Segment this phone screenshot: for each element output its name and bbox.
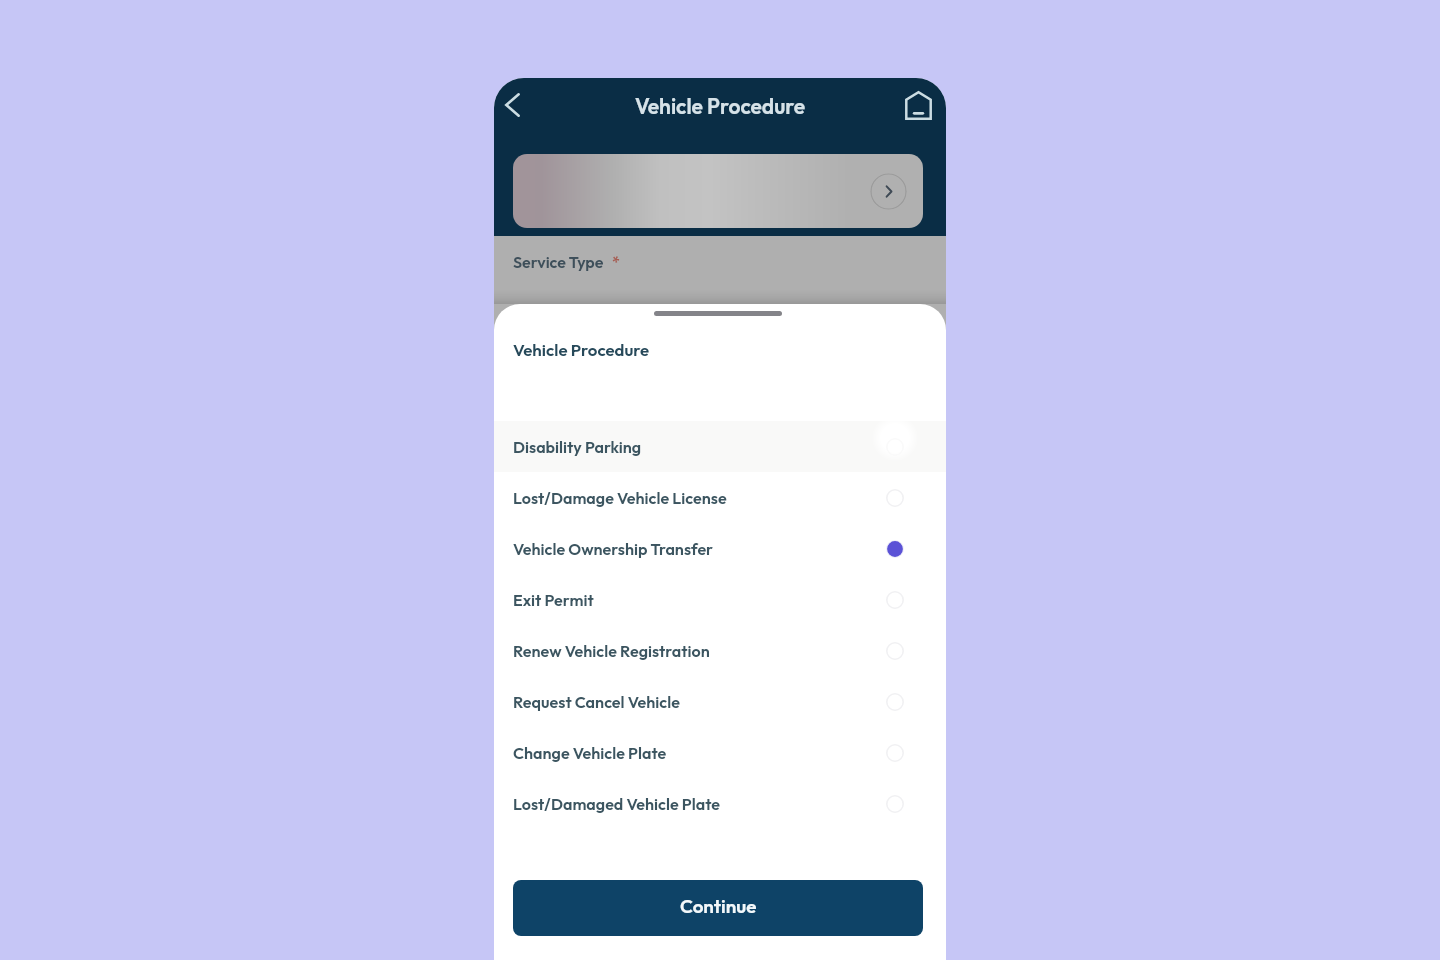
button[interactable]: Disability Parking <box>494 421 946 472</box>
staticText: Vehicle Procedure <box>513 339 650 360</box>
staticText: Change Vehicle Plate <box>513 743 886 763</box>
button[interactable]: Vehicle Ownership Transfer <box>494 523 946 574</box>
staticText: Renew Vehicle Registration <box>513 641 886 661</box>
button[interactable]: Open <box>513 154 923 228</box>
staticText: Vehicle Procedure <box>494 93 946 119</box>
button[interactable]: Back <box>494 83 534 127</box>
staticText: * <box>612 252 620 272</box>
button[interactable]: Request Cancel Vehicle <box>494 676 946 727</box>
button[interactable]: Exit Permit <box>494 574 946 625</box>
button[interactable]: Continue <box>513 880 923 936</box>
staticText: Lost/Damaged Vehicle Plate <box>513 794 886 814</box>
staticText: Disability Parking <box>513 437 886 457</box>
staticText: Continue <box>680 894 757 918</box>
other: Open <box>870 173 907 210</box>
staticText: Vehicle Ownership Transfer <box>513 539 886 559</box>
staticText: Exit Permit <box>513 590 886 610</box>
staticText: Service Type <box>513 252 604 272</box>
button[interactable]: Lost/Damaged Vehicle Plate <box>494 778 946 829</box>
button[interactable]: Renew Vehicle Registration <box>494 625 946 676</box>
staticText: Request Cancel Vehicle <box>513 692 886 712</box>
button[interactable]: Home <box>898 83 938 127</box>
staticText: Lost/Damage Vehicle License <box>513 488 886 508</box>
button[interactable]: Lost/Damage Vehicle License <box>494 472 946 523</box>
button[interactable]: Change Vehicle Plate <box>494 727 946 778</box>
